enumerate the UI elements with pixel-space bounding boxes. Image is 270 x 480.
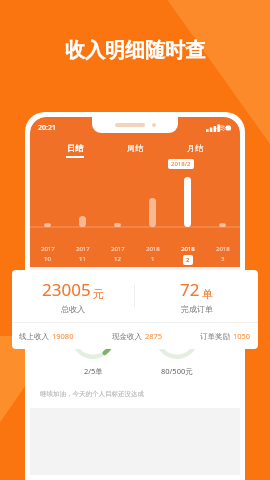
staticText: 10 xyxy=(44,255,51,263)
staticText: 2017 xyxy=(111,245,125,253)
staticText: 单 xyxy=(202,287,213,301)
button[interactable]: 2017 xyxy=(100,245,135,263)
staticText: 19080 xyxy=(52,331,74,341)
staticText: 线上收入 xyxy=(19,332,49,341)
staticText: 23005 xyxy=(42,278,91,301)
staticText: 现金收入 xyxy=(112,332,142,341)
staticText: 日结 xyxy=(67,143,83,153)
staticText: 周结 xyxy=(127,143,143,153)
button[interactable]: 收入目标 xyxy=(155,315,199,376)
button[interactable]: 接单目标 xyxy=(71,315,115,376)
staticText: 72 xyxy=(180,278,200,301)
staticText: 元 xyxy=(93,287,104,301)
staticText: 完成订单 xyxy=(181,304,213,314)
staticText: 订单奖励 xyxy=(200,332,230,341)
staticText: 2/5单 xyxy=(84,366,103,376)
staticText: 2017 xyxy=(76,245,90,253)
button[interactable]: 日结 xyxy=(60,141,90,160)
staticText: 2875 xyxy=(145,331,163,341)
button[interactable]: 2018 xyxy=(205,245,240,263)
staticText: 2018 xyxy=(146,245,160,253)
staticText: 2 xyxy=(186,256,190,264)
button[interactable]: 2017 xyxy=(30,245,65,263)
staticText: 总收入 xyxy=(61,304,85,314)
staticText: 12 xyxy=(114,255,121,263)
button[interactable]: 月结 xyxy=(180,141,210,160)
staticText: 80/500元 xyxy=(161,366,193,376)
button[interactable]: 2018 xyxy=(135,245,170,263)
staticText: 2018 xyxy=(216,245,230,253)
staticText: 收入明细随时查 xyxy=(65,38,205,63)
staticText: 11 xyxy=(79,255,86,263)
staticText: 2017 xyxy=(41,245,55,253)
staticText: 1050 xyxy=(233,331,251,341)
staticText: 2018 xyxy=(181,245,195,253)
staticText: 1 xyxy=(151,255,155,263)
button[interactable]: 2017 xyxy=(65,245,100,263)
staticText: 20:21 xyxy=(38,123,56,133)
button[interactable]: 2018 xyxy=(170,245,205,265)
button[interactable]: 周结 xyxy=(120,141,150,160)
staticText: 2018/2 xyxy=(171,160,191,168)
staticText: 继续加油，今天的个人目标还没达成 xyxy=(40,390,144,398)
staticText: 3 xyxy=(221,255,225,263)
staticText: 月结 xyxy=(187,143,203,153)
